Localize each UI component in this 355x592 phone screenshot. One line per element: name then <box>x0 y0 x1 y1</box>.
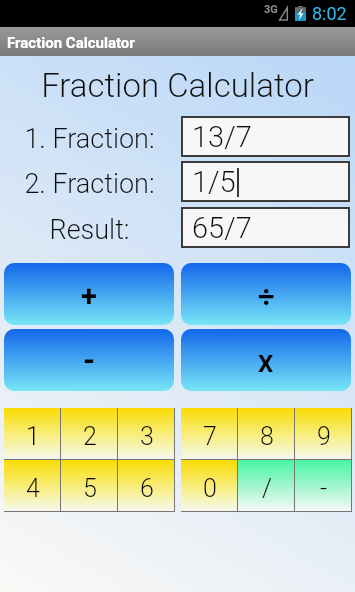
staticText: - <box>83 342 96 378</box>
staticText: 1. Fraction: <box>0 123 179 155</box>
staticText: X <box>258 350 274 378</box>
staticText: 2 <box>83 422 97 451</box>
button[interactable]: 13/7 <box>183 118 348 155</box>
staticText: 7 <box>203 422 217 451</box>
staticText: 3G <box>264 3 278 16</box>
staticText: 9 <box>317 422 331 451</box>
staticText: 8:02 <box>312 3 347 24</box>
button[interactable]: 8 <box>238 408 295 459</box>
staticText: ÷ <box>258 280 275 314</box>
staticText: - <box>320 474 328 503</box>
button[interactable]: ÷ <box>181 263 351 325</box>
button[interactable]: 4 <box>4 460 61 511</box>
button[interactable]: + <box>4 263 174 325</box>
staticText: + <box>81 279 97 313</box>
button[interactable]: 2 <box>61 408 118 459</box>
staticText: 3 <box>140 422 154 451</box>
staticText: 8 <box>260 422 274 451</box>
button[interactable]: 5 <box>61 460 118 511</box>
button[interactable]: 3 <box>118 408 175 459</box>
staticText: Result: <box>0 214 179 246</box>
button[interactable]: - <box>4 329 174 391</box>
button[interactable]: 1 <box>4 408 61 459</box>
staticText: / <box>262 474 272 503</box>
staticText: 4 <box>26 474 40 503</box>
staticText: 5 <box>83 474 97 503</box>
staticText: 65/7 <box>192 211 252 245</box>
button[interactable]: 9 <box>295 408 352 459</box>
staticText: 1 <box>26 422 40 451</box>
button[interactable]: X <box>181 329 351 391</box>
button[interactable]: 1/5 <box>183 163 348 200</box>
staticText: Fraction Calculator <box>0 66 355 105</box>
staticText: 13/7 <box>192 120 252 154</box>
staticText: 6 <box>140 474 154 503</box>
button[interactable]: - <box>295 460 352 511</box>
button[interactable]: / <box>238 460 295 511</box>
staticText: 1/5 <box>192 165 236 199</box>
button[interactable]: 0 <box>181 460 238 511</box>
other: Battery <box>295 6 306 21</box>
button[interactable]: 6 <box>118 460 175 511</box>
button[interactable]: 65/7 <box>183 209 348 246</box>
staticText: 2. Fraction: <box>0 168 179 200</box>
staticText: 0 <box>203 474 217 503</box>
staticText: Fraction Calculator <box>7 34 135 52</box>
button[interactable]: 7 <box>181 408 238 459</box>
